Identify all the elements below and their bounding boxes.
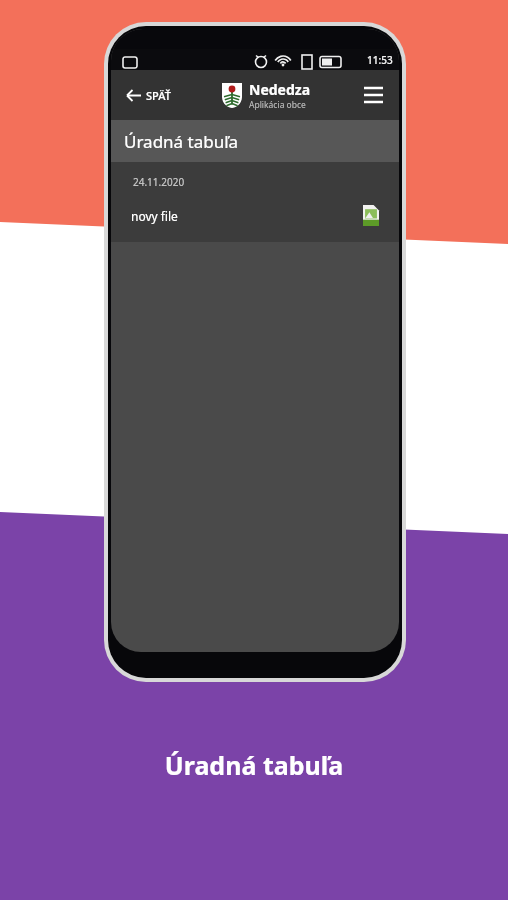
staticText: 24.11.2020 [133,175,185,189]
button[interactable]: Úradná tabuľa [111,120,399,162]
staticText: Úradná tabuľa [0,748,508,782]
button[interactable]: 24.11.2020 [111,162,399,242]
staticText: 11:53 [367,53,393,67]
button[interactable]: SPÄŤ [121,82,176,109]
staticText: SPÄŤ [146,88,171,103]
staticText: Aplikácia obce [249,99,306,111]
staticText: Úradná tabuľa [124,130,239,153]
button[interactable]: Menu [358,82,389,108]
staticText: Nededza [249,80,311,99]
staticText: novy file [131,208,178,224]
